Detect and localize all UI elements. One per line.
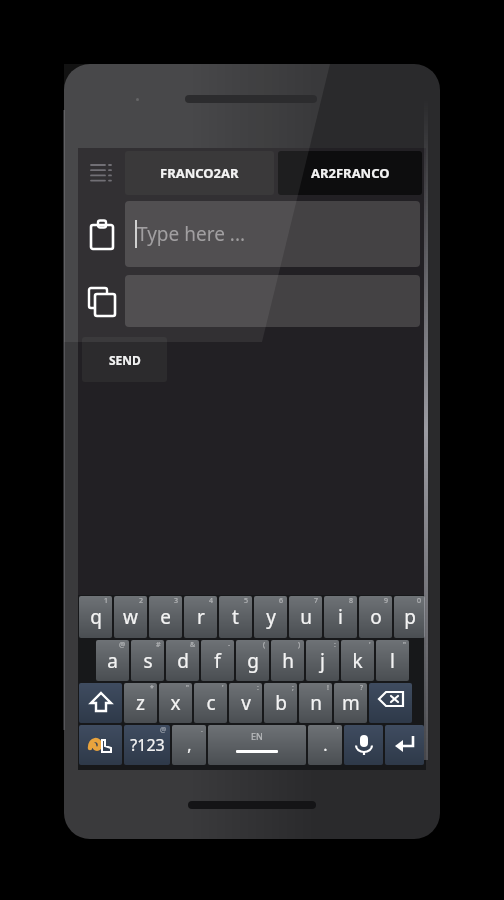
button[interactable]: AR2FRANCO [278,151,422,195]
staticText: " [403,640,406,650]
staticText: . [323,734,328,756]
button[interactable]: d [166,640,199,681]
staticText: ?123 [130,734,165,756]
staticText: FRANCO2AR [160,164,239,182]
staticText: v [241,690,251,716]
staticText: m [342,690,360,716]
button[interactable] [125,275,420,327]
staticText: k [352,648,363,674]
staticText: 8 [349,596,354,606]
button[interactable]: c [194,683,227,723]
staticText: * [150,683,154,693]
button[interactable]: y [254,596,287,638]
button[interactable]: a [96,640,129,681]
button[interactable]: key [208,725,306,765]
button[interactable]: , [172,725,206,765]
button[interactable]: z [124,683,157,723]
staticText: ! [327,683,329,693]
button[interactable]: v [229,683,262,723]
staticText: x [170,690,181,716]
staticText: w [123,604,138,630]
staticText: Type here ... [137,221,246,247]
button[interactable]: key [79,725,122,765]
staticText: d [177,648,189,674]
staticText: ( [263,640,266,650]
staticText: f [214,648,221,674]
staticText: ; [292,683,294,693]
staticText: : [257,683,259,693]
staticText: . [201,725,203,735]
staticText: , [187,734,192,756]
button[interactable]: Type here ... [125,201,420,267]
staticText: n [310,690,322,716]
button[interactable]: key [79,683,122,723]
staticText: 2 [139,596,144,606]
staticText: a [107,648,118,674]
button[interactable]: ?123 [124,725,170,765]
button[interactable]: FRANCO2AR [125,151,274,195]
staticText: b [275,690,287,716]
button[interactable]: . [308,725,342,765]
staticText: @ [160,725,167,735]
staticText: & [190,640,196,650]
staticText: 3 [174,596,179,606]
staticText: AR2FRANCO [311,164,390,182]
button[interactable]: l [376,640,409,681]
staticText: e [160,604,171,630]
button[interactable]: w [114,596,147,638]
staticText: @ [119,640,126,650]
staticText: - [228,640,231,650]
button[interactable]: Copy [78,273,125,329]
staticText: y [266,604,276,630]
staticText: i [338,604,343,630]
staticText: ' [222,683,224,693]
staticText: 0 [417,596,422,606]
button[interactable]: key [344,725,383,765]
button[interactable]: e [149,596,182,638]
staticText: l [390,648,395,674]
button[interactable]: key [385,725,424,765]
staticText: o [370,604,382,630]
button[interactable]: Menu [78,148,125,198]
staticText: ' [369,640,371,650]
staticText: 9 [384,596,389,606]
staticText: 5 [244,596,249,606]
staticText: z [136,690,145,716]
staticText: q [90,604,102,630]
staticText: h [282,648,294,674]
staticText: # [156,640,161,650]
button[interactable]: key [369,683,412,723]
button[interactable]: m [334,683,367,723]
button[interactable]: p [394,596,425,638]
button[interactable]: u [289,596,322,638]
button[interactable]: o [359,596,392,638]
staticText: ) [298,640,301,650]
staticText: p [404,604,416,630]
button[interactable]: g [236,640,269,681]
staticText: s [143,648,153,674]
staticText: : [334,640,336,650]
button[interactable]: t [219,596,252,638]
button[interactable]: r [184,596,217,638]
button[interactable]: q [79,596,112,638]
staticText: u [300,604,312,630]
staticText: j [320,648,325,674]
button[interactable]: f [201,640,234,681]
staticText: r [197,604,205,630]
button[interactable]: SEND [82,337,167,382]
button[interactable]: x [159,683,192,723]
staticText: 1 [104,596,109,606]
button[interactable]: k [341,640,374,681]
staticText: 4 [209,596,214,606]
staticText: EN [251,730,263,742]
staticText: 6 [279,596,284,606]
button[interactable]: h [271,640,304,681]
button[interactable]: j [306,640,339,681]
button[interactable]: b [264,683,297,723]
staticText: c [206,690,216,716]
button[interactable]: s [131,640,164,681]
button[interactable]: n [299,683,332,723]
button[interactable]: Paste [78,198,125,270]
staticText: t [232,604,239,630]
button[interactable]: i [324,596,357,638]
